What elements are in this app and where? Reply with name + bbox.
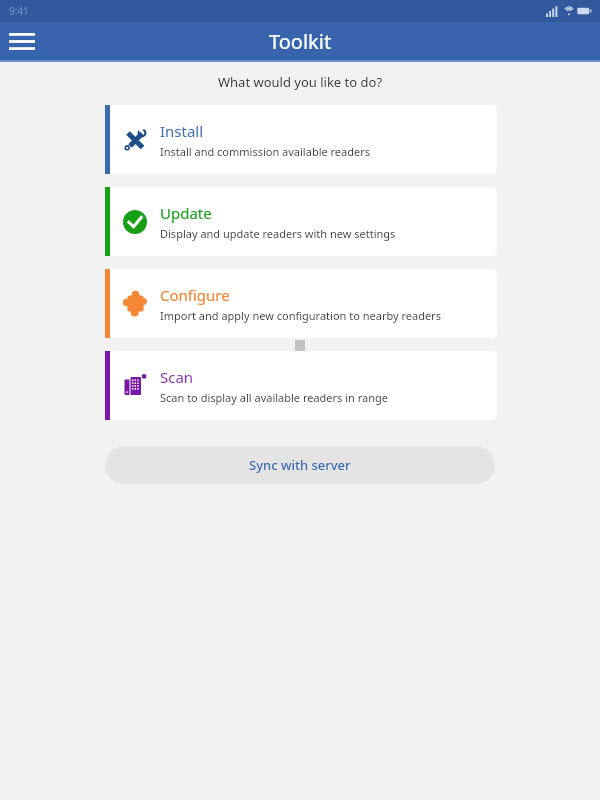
button[interactable]: Sync with server [105,446,495,484]
staticText: Display and update readers with new sett… [160,226,396,241]
staticText: What would you like to do? [0,73,600,91]
button[interactable]: Install [105,105,497,174]
button[interactable]: Configure [105,269,497,338]
staticText: Import and apply new configuration to ne… [160,308,441,323]
button[interactable]: Update [105,187,497,256]
staticText: Update [160,203,212,223]
staticText: Scan to display all available readers in… [160,390,388,405]
staticText: Install and commission available readers [160,144,371,159]
staticText: Configure [160,285,230,305]
staticText: Toolkit [269,28,332,55]
staticText: 9:41 [9,4,29,18]
staticText: Scan [160,367,194,387]
staticText: Install [160,121,204,141]
button[interactable]: Scan [105,351,497,420]
staticText: Sync with server [249,456,351,474]
button[interactable]: Open navigation menu [0,22,44,60]
